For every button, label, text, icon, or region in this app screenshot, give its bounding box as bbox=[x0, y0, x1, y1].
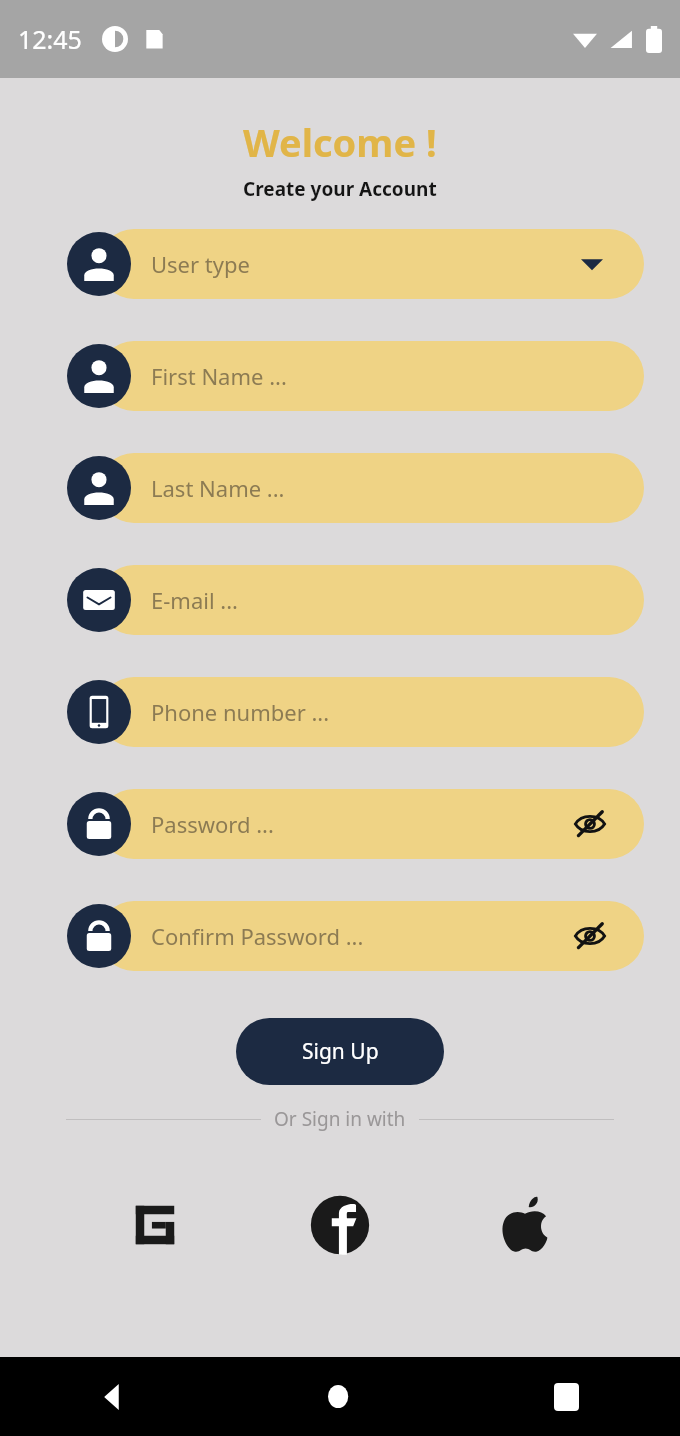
staticText: Welcome ! bbox=[243, 116, 437, 168]
button[interactable]: Open dropdown bbox=[572, 244, 612, 284]
button[interactable]: Password ... bbox=[67, 789, 612, 859]
button[interactable]: Toggle password visibility bbox=[568, 802, 612, 846]
staticText: Password ... bbox=[151, 809, 568, 839]
staticText: Or Sign in with bbox=[274, 1106, 406, 1132]
staticText: Create your Account bbox=[243, 176, 437, 202]
staticText: First Name ... bbox=[151, 361, 604, 391]
button[interactable]: Sign in with Google bbox=[124, 1194, 186, 1256]
staticText: 12:45 bbox=[18, 22, 82, 56]
staticText: Confirm Password ... bbox=[151, 921, 568, 951]
staticText: Phone number ... bbox=[151, 697, 604, 727]
button[interactable]: User type bbox=[67, 229, 612, 299]
staticText: Last Name ... bbox=[151, 473, 604, 503]
button[interactable]: Sign in with Apple bbox=[494, 1194, 556, 1256]
button[interactable]: Phone number ... bbox=[67, 677, 612, 747]
button[interactable]: Recent apps bbox=[453, 1357, 680, 1436]
staticText: Sign Up bbox=[302, 1037, 379, 1066]
button[interactable]: Confirm Password ... bbox=[67, 901, 612, 971]
button[interactable]: E-mail ... bbox=[67, 565, 612, 635]
button[interactable]: Sign Up bbox=[236, 1018, 444, 1085]
staticText: User type bbox=[151, 249, 572, 279]
staticText: E-mail ... bbox=[151, 585, 604, 615]
button[interactable]: Sign in with Facebook bbox=[309, 1194, 371, 1256]
button[interactable]: Toggle password visibility bbox=[568, 914, 612, 958]
button[interactable]: First Name ... bbox=[67, 341, 612, 411]
button[interactable]: Back bbox=[0, 1357, 226, 1436]
button[interactable]: Home bbox=[226, 1357, 453, 1436]
button[interactable]: Last Name ... bbox=[67, 453, 612, 523]
